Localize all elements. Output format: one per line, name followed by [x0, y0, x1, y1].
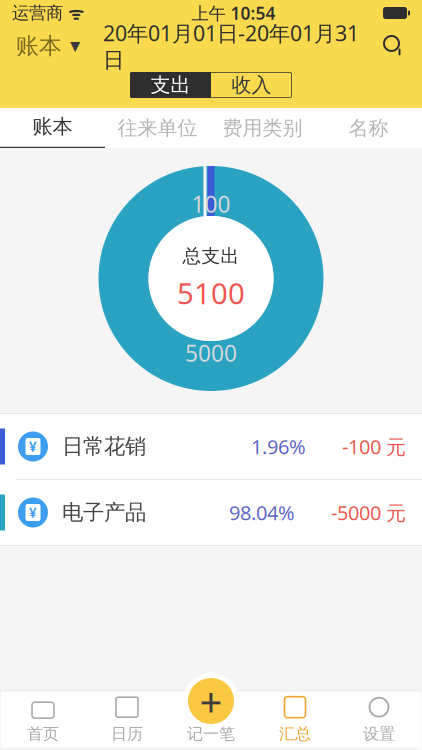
staticText: 20年01月01日-20年01月31日	[103, 19, 359, 73]
staticText: 日常花销	[62, 433, 146, 460]
staticText: 100	[191, 189, 230, 219]
staticText: 支出	[150, 73, 190, 97]
button[interactable]: ¥	[0, 480, 422, 545]
staticText: 5000	[185, 338, 237, 368]
staticText: ¥	[29, 438, 37, 455]
staticText: ᯤ	[63, 1, 84, 24]
button[interactable]: 名称	[315, 108, 422, 148]
button[interactable]: 账本	[0, 108, 105, 148]
button[interactable]: 日历	[85, 691, 169, 747]
button[interactable]: 支出	[130, 72, 211, 98]
staticText: 日历	[111, 724, 143, 744]
staticText: -100 元	[342, 433, 406, 460]
button[interactable]: 账本	[6, 26, 90, 66]
staticText: 运营商	[12, 2, 63, 24]
staticText: ¥	[29, 504, 37, 521]
button[interactable]: 首页	[1, 691, 85, 747]
staticText: 收入	[231, 73, 271, 97]
staticText: 1.96%	[251, 433, 306, 460]
button[interactable]: 搜索	[372, 26, 416, 66]
button[interactable]: 设置	[337, 691, 421, 747]
staticText: 费用类别	[222, 116, 302, 140]
staticText: 首页	[27, 724, 59, 744]
staticText: 98.04%	[229, 499, 295, 526]
staticText: 汇总	[279, 724, 311, 744]
button[interactable]: 费用类别	[210, 108, 315, 148]
staticText: 名称	[348, 116, 388, 140]
staticText: +	[199, 674, 222, 727]
button[interactable]: 记一笔	[169, 691, 253, 747]
staticText: 账本	[32, 114, 72, 139]
staticText: ▼	[70, 38, 80, 53]
staticText: 往来单位	[117, 116, 197, 140]
staticText: 5100	[177, 273, 245, 312]
staticText: 账本	[16, 32, 62, 60]
button[interactable]: 收入	[211, 72, 292, 98]
staticText: 记一笔	[187, 724, 235, 744]
staticText: 总支出	[182, 245, 239, 267]
button[interactable]: 记一笔	[183, 673, 239, 729]
staticText: 电子产品	[62, 499, 146, 526]
button[interactable]: ¥	[0, 414, 422, 480]
staticText: 上午 10:54	[191, 1, 275, 24]
button[interactable]: 往来单位	[105, 108, 210, 148]
button[interactable]: 汇总	[253, 691, 337, 747]
staticText: -5000 元	[331, 499, 406, 526]
staticText: 设置	[363, 724, 395, 744]
